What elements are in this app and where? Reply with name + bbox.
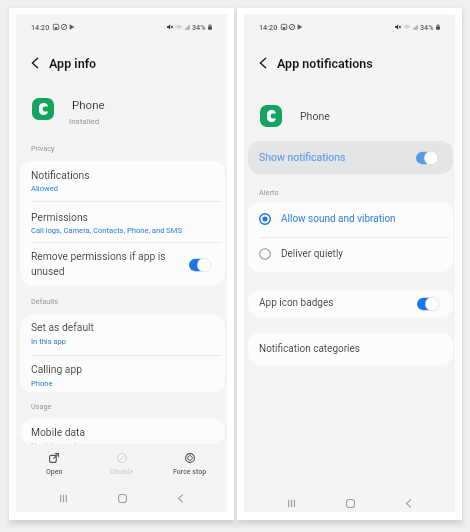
button[interactable]: App icon badges [248,290,453,317]
staticText: Alerts [259,188,279,197]
button[interactable]: Disable [100,451,144,478]
staticText: Notification categories [259,343,361,355]
staticText: Phone [72,98,105,111]
staticText: App icon badges [259,297,334,309]
staticText: Call logs, Camera, Contacts, Phone, and … [31,226,182,235]
staticText: Force stop [173,468,207,476]
button[interactable]: Home [111,487,133,509]
staticText: Privacy [31,144,55,153]
button[interactable]: Home [339,492,361,514]
staticText: Mobile data [31,426,86,438]
staticText: 34% [192,23,206,31]
button[interactable] [20,161,225,201]
staticText: App notifications [277,56,373,71]
button[interactable]: Toggle [189,258,211,272]
staticText: Allow sound and vibration [281,213,396,225]
button[interactable]: Toggle [416,151,438,165]
button[interactable]: Back [397,492,419,514]
button[interactable]: Force stop [168,451,212,478]
button[interactable] [20,315,225,355]
button[interactable]: Open [32,451,76,478]
button[interactable] [20,243,225,285]
staticText: App info [49,56,97,71]
staticText: Permissions [31,211,88,223]
staticText: Set as default [31,321,94,333]
button[interactable]: Navigate up [253,53,272,72]
button[interactable] [248,238,453,272]
staticText: Notifications [31,169,90,181]
button[interactable] [20,202,225,242]
staticText: Allowed [31,184,58,193]
staticText: 14:20 [31,23,50,31]
staticText: Installed [69,117,100,126]
button[interactable]: Navigate up [25,53,44,72]
staticText: Deliver quietly [281,248,344,260]
button[interactable]: Show notifications [248,141,453,174]
staticText: Calling app [31,363,83,375]
button[interactable]: Notification categories [248,333,453,365]
button[interactable] [20,419,225,444]
staticText: No data used [31,441,76,444]
staticText: Usage [31,402,52,411]
staticText: Disable [110,468,134,476]
staticText: 34% [420,23,434,31]
staticText: Show notifications [259,151,346,163]
staticText: Defaults [31,297,59,306]
button[interactable] [248,202,453,237]
staticText: Phone [300,110,330,122]
button[interactable]: Back [169,487,191,509]
staticText: Phone [31,379,53,388]
button[interactable]: Recent apps [280,492,302,514]
staticText: Open [46,468,63,476]
staticText: Remove permissions if app is unused [31,250,166,277]
staticText: 14:20 [259,23,278,31]
button[interactable]: Recent apps [52,487,74,509]
button[interactable]: Toggle [417,297,439,311]
staticText: In this app [31,337,67,346]
button[interactable] [20,356,225,392]
